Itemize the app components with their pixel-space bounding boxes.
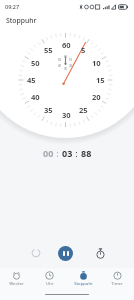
staticText: Wecker: [9, 281, 24, 287]
staticText: 25: [79, 105, 88, 115]
staticText: 50: [31, 58, 40, 68]
staticText: Timer: [111, 281, 123, 287]
staticText: 40: [58, 64, 62, 68]
staticText: 45: [27, 75, 36, 85]
staticText: 40: [31, 92, 40, 102]
staticText: 20: [69, 64, 73, 68]
staticText: 09:27: [5, 3, 20, 10]
staticText: Stoppuhr: [6, 16, 37, 25]
staticText: 10: [92, 58, 101, 68]
staticText: 88: [81, 147, 92, 159]
button[interactable]: Pause: [58, 246, 73, 261]
button[interactable]: Zurücksetzen: [89, 242, 111, 264]
staticText: 60: [62, 40, 71, 50]
staticText: 55: [44, 45, 53, 55]
button[interactable]: Runde: [25, 242, 47, 264]
button[interactable]: Stoppuhr: [66, 271, 100, 287]
staticText: Stoppuhr: [74, 281, 93, 287]
staticText: :: [73, 147, 81, 159]
staticText: 03: [62, 147, 73, 159]
staticText: 15: [96, 75, 105, 85]
staticText: 30: [64, 67, 68, 71]
staticText: 10: [69, 58, 73, 62]
staticText: 20: [92, 92, 101, 102]
staticText: 5: [81, 45, 86, 55]
staticText: 35: [44, 105, 53, 115]
staticText: Uhr: [46, 281, 54, 287]
staticText: 60: [64, 55, 68, 59]
button[interactable]: Wecker: [0, 271, 33, 287]
staticText: 00: [43, 147, 54, 159]
button[interactable]: Timer: [100, 271, 134, 287]
staticText: 50: [58, 58, 62, 62]
staticText: :: [54, 147, 62, 159]
button[interactable]: Uhr: [33, 271, 66, 287]
staticText: 30: [62, 110, 71, 120]
